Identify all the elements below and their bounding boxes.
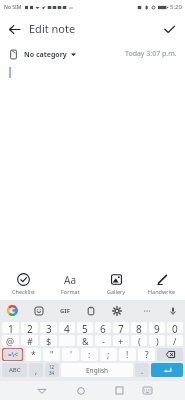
staticText: ?: [145, 349, 149, 361]
button[interactable]: 1: [2, 322, 19, 333]
button[interactable]: Voice input: [165, 303, 180, 318]
button[interactable]: ?: [138, 348, 155, 361]
staticText: Handwrite: [148, 288, 176, 295]
staticText: *: [31, 349, 36, 361]
staticText: -: [102, 335, 105, 346]
button[interactable]: Period: [135, 363, 149, 377]
staticText: 8: [136, 322, 142, 333]
staticText: &: [82, 335, 89, 346]
staticText: 9: [154, 322, 160, 333]
button[interactable]: Backspace: [157, 348, 183, 361]
button[interactable]: =\<: [2, 348, 23, 361]
button[interactable]: Home: [72, 382, 89, 399]
button[interactable]: ": [43, 348, 60, 361]
button[interactable]: Gallery: [93, 268, 139, 300]
staticText: ': [70, 349, 72, 361]
button[interactable]: Enter: [151, 363, 183, 377]
button[interactable]: 4: [59, 322, 75, 333]
staticText: 6: [100, 322, 106, 333]
staticText: Today 3:07 p.m.: [125, 49, 177, 59]
button[interactable]: @: [2, 335, 19, 346]
staticText: +: [118, 335, 124, 346]
staticText: ): [156, 335, 159, 346]
button[interactable]: Comma: [29, 363, 43, 377]
button[interactable]: No category: [8, 49, 76, 60]
staticText: (: [138, 335, 141, 346]
staticText: 3: [46, 322, 52, 333]
button[interactable]: 2: [21, 322, 38, 333]
staticText: English: [86, 366, 109, 375]
button[interactable]: +: [113, 335, 129, 346]
staticText: No SIM: [4, 4, 22, 11]
button[interactable]: *: [25, 348, 41, 361]
button[interactable]: &: [77, 335, 93, 346]
button[interactable]: Space: [61, 363, 133, 377]
staticText: Edit note: [29, 21, 76, 36]
staticText: 34: [49, 370, 55, 376]
staticText: 4: [64, 322, 70, 333]
button[interactable]: Stickers: [31, 303, 46, 318]
staticText: Gallery: [107, 288, 126, 295]
staticText: 1: [8, 322, 14, 333]
button[interactable]: Number pad: [45, 363, 59, 377]
staticText: /: [173, 335, 177, 346]
staticText: 12: [49, 364, 55, 370]
button[interactable]: 5: [77, 322, 93, 333]
button[interactable]: !: [119, 348, 136, 361]
staticText: Aa: [64, 273, 76, 286]
staticText: Format: [61, 288, 80, 295]
button[interactable]: Google search: [5, 303, 20, 318]
button[interactable]: :: [81, 348, 98, 361]
button[interactable]: GIF: [57, 303, 72, 318]
button[interactable]: Switch to letters: [2, 363, 27, 377]
button[interactable]: ): [149, 335, 165, 346]
staticText: Checklist: [12, 288, 36, 295]
button[interactable]: Keyboard settings: [109, 303, 124, 318]
button[interactable]: Back: [0, 15, 28, 43]
staticText: 5:20: [170, 3, 182, 11]
button[interactable]: Back: [33, 382, 50, 399]
staticText: .: [141, 365, 144, 376]
staticText: !: [126, 349, 129, 361]
staticText: ;: [107, 349, 110, 361]
button[interactable]: Handwrite: [139, 268, 185, 300]
button[interactable]: Aa: [47, 268, 93, 300]
button[interactable]: 9: [149, 322, 165, 333]
button[interactable]: ': [62, 348, 79, 361]
staticText: ABC: [9, 366, 21, 374]
button[interactable]: Clipboard: [83, 303, 98, 318]
button[interactable]: 7: [113, 322, 129, 333]
staticText: 7: [118, 322, 124, 333]
button[interactable]: 8: [131, 322, 147, 333]
staticText: ": [50, 349, 54, 361]
staticText: No category: [24, 50, 67, 60]
button[interactable]: -: [95, 335, 111, 346]
staticText: =\<: [8, 350, 18, 359]
button[interactable]: More options: [139, 303, 154, 318]
button[interactable]: Recent apps: [111, 382, 128, 399]
staticText: $: [46, 335, 52, 346]
staticText: 0: [172, 322, 178, 333]
button[interactable]: $: [40, 335, 57, 346]
button[interactable]: 3: [40, 322, 57, 333]
staticText: 5: [82, 322, 88, 333]
button[interactable]: /: [167, 335, 183, 346]
button[interactable]: (: [131, 335, 147, 346]
staticText: #: [27, 335, 33, 346]
button[interactable]: Checklist: [0, 268, 47, 300]
staticText: :: [88, 349, 91, 361]
staticText: ,: [35, 365, 38, 376]
button[interactable]: 6: [95, 322, 111, 333]
staticText: 2: [27, 322, 33, 333]
button[interactable]: 0: [167, 322, 183, 333]
staticText: GIF: [60, 307, 70, 315]
staticText: @: [6, 335, 15, 346]
button[interactable]: ;: [100, 348, 117, 361]
button[interactable]: #: [21, 335, 38, 346]
button[interactable]: Hide keyboard: [139, 382, 156, 399]
button[interactable]: Save note: [155, 15, 183, 43]
